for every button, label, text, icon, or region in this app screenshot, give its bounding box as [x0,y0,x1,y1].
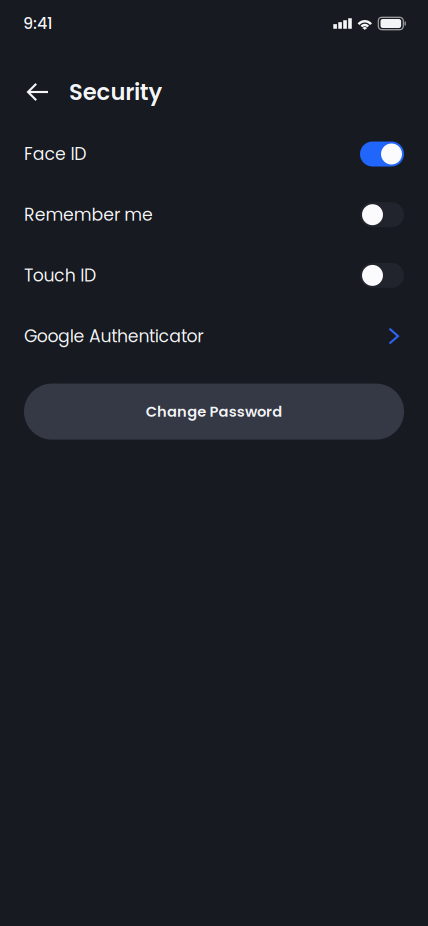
button[interactable]: Touch ID [0,253,428,297]
button[interactable]: Face ID [0,132,428,176]
button[interactable]: Remember me [0,193,428,237]
staticText: Remember me [24,203,153,227]
staticText: Google Authenticator [24,324,203,348]
staticText: Touch ID [24,263,96,288]
staticText: Security [69,76,163,108]
staticText: Face ID [24,142,86,166]
staticText: Change Password [146,401,282,422]
staticText: 9:41 [23,12,53,35]
button[interactable]: Back [22,72,54,112]
button[interactable]: Google Authenticator [0,314,428,358]
button[interactable]: Change Password [0,384,428,440]
